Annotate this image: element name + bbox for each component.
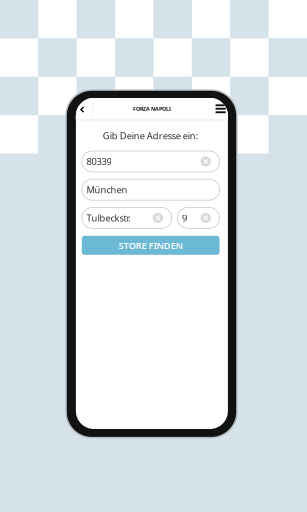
staticText: 9 (182, 212, 187, 224)
button[interactable]: Clear (201, 213, 211, 223)
staticText: 80339 (86, 155, 111, 168)
staticText: Tulbeckstr. (86, 212, 131, 224)
button[interactable]: STORE FINDEN (82, 236, 220, 255)
staticText: FORZA NAPOLI (133, 105, 171, 112)
staticText: Gib Deine Adresse ein: (103, 129, 199, 142)
staticText: STORE FINDEN (119, 239, 183, 251)
staticText: München (86, 183, 127, 196)
button[interactable]: Clear (153, 213, 163, 223)
button[interactable]: Back (76, 98, 92, 120)
button[interactable]: Clear (201, 156, 211, 167)
button[interactable]: Menu (208, 98, 228, 120)
